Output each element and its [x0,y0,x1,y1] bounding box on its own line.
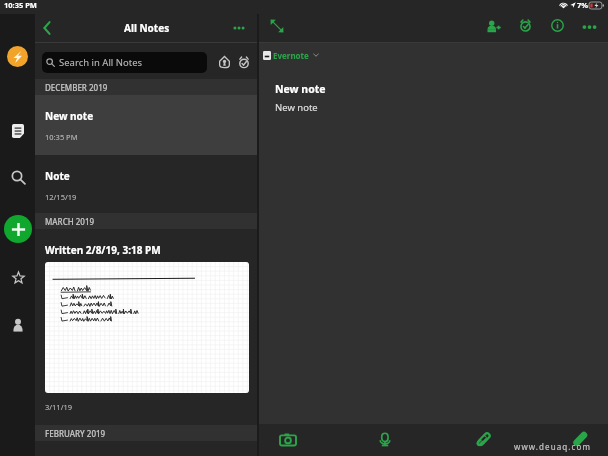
staticText: MARCH 2019 [45,216,95,227]
button[interactable]: Search [6,165,30,189]
button[interactable]: Written 2/8/19, 3:18 PM [35,229,257,425]
button[interactable]: Back [37,18,57,38]
button[interactable]: More options [579,17,599,37]
staticText: New note [275,101,318,114]
button[interactable]: Info [547,15,567,35]
staticText: Written 2/8/19, 3:18 PM [45,243,161,257]
staticText: FEBRUARY 2019 [45,428,106,439]
staticText: Evernote [273,50,309,61]
button[interactable]: Notes [6,119,30,143]
button[interactable]: Camera [277,428,299,450]
staticText: 12/15/19 [45,192,77,202]
button[interactable]: Lock [217,55,231,69]
button[interactable]: Reminders [237,55,251,69]
button[interactable]: Account [6,313,30,337]
staticText: 7% [577,0,589,10]
button[interactable]: New note [35,95,257,155]
button[interactable]: Note [35,155,257,213]
button[interactable]: Evernote [263,48,319,62]
staticText: DECEMBER 2019 [45,82,108,93]
button[interactable]: Upgrade [7,46,28,67]
button[interactable]: Share [483,16,503,36]
button[interactable]: New note [4,215,32,243]
button[interactable]: More options [229,18,249,38]
button[interactable]: Shortcuts [6,266,30,290]
button[interactable]: Search in All Notes [42,52,207,73]
staticText: New note [45,109,94,123]
button[interactable]: Handwriting [569,428,591,450]
staticText: Note [45,169,70,183]
staticText: New note [275,82,326,96]
staticText: All Notes [124,21,170,35]
staticText: 10:35 PM [4,0,37,10]
staticText: 10:35 PM [45,132,78,142]
button[interactable]: Expand [267,16,287,36]
staticText: Search in All Notes [59,56,143,69]
button[interactable]: Attachment [472,428,494,450]
button[interactable]: Audio [374,428,396,450]
button[interactable]: Reminder [515,15,535,35]
staticText: 3/11/19 [45,402,73,412]
staticText: www.deuaq.com [514,441,592,452]
